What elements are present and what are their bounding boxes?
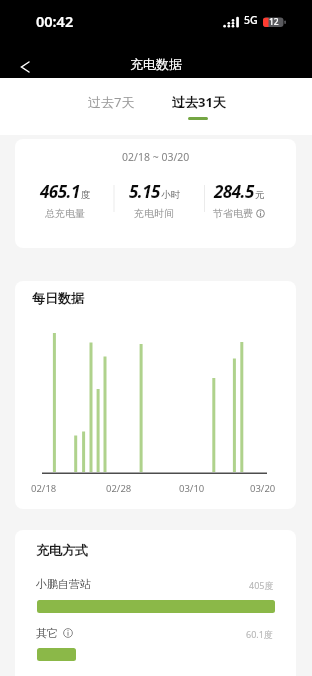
staticText: 12 xyxy=(269,16,279,28)
staticText: 度 xyxy=(81,189,91,201)
staticText: 405度 xyxy=(249,579,274,591)
staticText: 03/10 xyxy=(179,482,205,495)
staticText: 00:42 xyxy=(36,11,74,29)
staticText: 02/18 xyxy=(31,482,57,495)
staticText: 60.1度 xyxy=(246,628,273,640)
staticText: 充电时间 xyxy=(134,207,174,220)
staticText: 节省电费 xyxy=(213,207,253,220)
staticText: 02/28 xyxy=(106,482,132,495)
staticText: 元 xyxy=(255,189,265,201)
staticText: 每日数据 xyxy=(32,290,84,306)
staticText: 03/20 xyxy=(250,482,276,495)
staticText: 总充电量 xyxy=(45,207,85,220)
staticText: 02/18 ~ 03/20 xyxy=(122,150,190,164)
staticText: 小时 xyxy=(161,189,180,201)
staticText: 5G xyxy=(244,13,258,27)
staticText: 5.15 xyxy=(129,180,160,203)
button[interactable] xyxy=(37,600,275,613)
staticText: 充电方式 xyxy=(36,542,88,558)
staticText: 465.1 xyxy=(40,180,80,203)
button[interactable]: 过去7天 xyxy=(66,92,156,111)
button[interactable] xyxy=(37,648,76,661)
staticText: 充电数据 xyxy=(130,56,182,72)
button[interactable] xyxy=(12,54,38,80)
staticText: 过去7天 xyxy=(88,93,135,111)
staticText: 小鹏自营站 xyxy=(36,577,91,591)
button[interactable]: 过去31天 xyxy=(154,92,244,111)
staticText: 其它 xyxy=(36,626,58,640)
staticText: 过去31天 xyxy=(172,93,226,111)
staticText: 284.5 xyxy=(214,180,254,203)
